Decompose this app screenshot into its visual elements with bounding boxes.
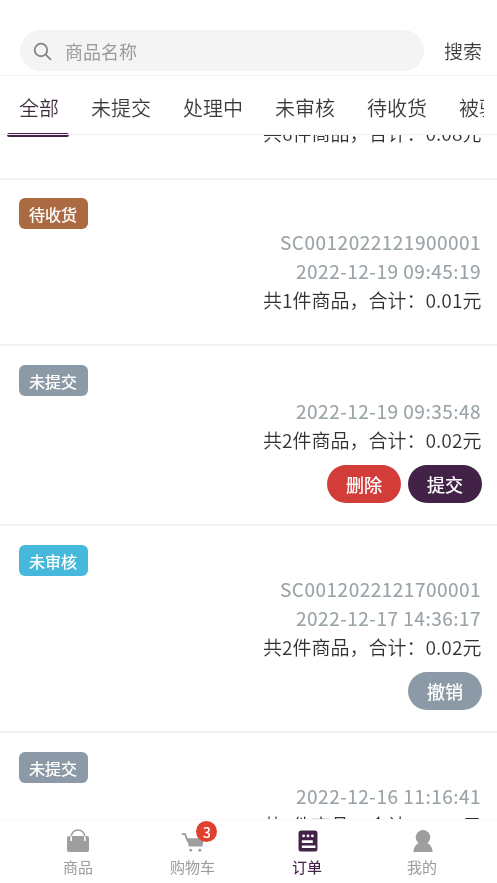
staticText: 待收货: [367, 93, 427, 122]
button[interactable]: 未提交: [75, 79, 167, 135]
staticText: 未提交: [91, 93, 151, 122]
button[interactable]: 未提交: [19, 752, 88, 783]
button[interactable]: 全部: [3, 79, 75, 135]
staticText: SC0012022121900001: [280, 228, 482, 256]
staticText: 2022-12-17 14:36:17: [296, 604, 482, 632]
staticText: 提交: [427, 471, 463, 497]
staticText: 2022-12-19 09:35:48: [296, 397, 482, 425]
staticText: 未审核: [29, 549, 78, 572]
staticText: 共1件商品，合计：0.01元: [263, 286, 482, 314]
staticText: 商品: [63, 856, 94, 878]
button[interactable]: 未提交: [19, 365, 88, 396]
staticText: 共2件商品，合计：0.02元: [263, 426, 482, 454]
staticText: 处理中: [183, 93, 243, 122]
staticText: 搜索: [444, 37, 483, 65]
button[interactable]: 处理中: [167, 79, 259, 135]
button[interactable]: Profile: [365, 822, 480, 883]
button[interactable]: 未审核: [259, 79, 351, 135]
button[interactable]: 待收货: [351, 79, 443, 135]
button[interactable]: 待收货: [19, 198, 88, 229]
staticText: 未提交: [29, 756, 78, 779]
staticText: 未审核: [275, 93, 335, 122]
staticText: 我的: [407, 856, 438, 878]
staticText: 3: [203, 822, 211, 842]
button[interactable]: 商品名称: [20, 30, 424, 71]
staticText: 共2件商品，合计：0.02元: [263, 633, 482, 661]
staticText: 未提交: [29, 369, 78, 392]
button[interactable]: Products: [21, 822, 135, 883]
staticText: 全部: [19, 93, 59, 122]
button[interactable]: 未提交: [0, 346, 497, 526]
button[interactable]: 搜索: [424, 30, 483, 71]
button[interactable]: 未审核: [19, 545, 88, 576]
staticText: 待收货: [29, 202, 78, 225]
button[interactable]: 未审核: [0, 526, 497, 733]
button[interactable]: Orders: [250, 822, 365, 883]
button[interactable]: 被驳: [443, 79, 497, 135]
staticText: SC0012022121700001: [280, 575, 482, 603]
staticText: 撤销: [427, 678, 463, 704]
staticText: 2022-12-19 09:45:19: [296, 257, 482, 285]
staticText: 商品名称: [65, 38, 137, 64]
staticText: 共1件商品，合计：0.01元: [263, 811, 482, 819]
staticText: 共6件商品，合计：0.08元: [263, 135, 482, 147]
staticText: 订单: [292, 856, 323, 878]
staticText: 2022-12-16 11:16:41: [296, 782, 482, 810]
button[interactable]: 提交: [408, 465, 482, 503]
staticText: 被驳: [459, 93, 484, 122]
button[interactable]: 待收货: [0, 179, 497, 346]
button[interactable]: 删除: [327, 465, 401, 503]
staticText: 删除: [346, 471, 382, 497]
button[interactable]: 撤销: [408, 672, 482, 710]
button[interactable]: Cart: [135, 822, 250, 883]
staticText: 购物车: [170, 856, 216, 878]
button[interactable]: 未提交: [0, 733, 497, 819]
